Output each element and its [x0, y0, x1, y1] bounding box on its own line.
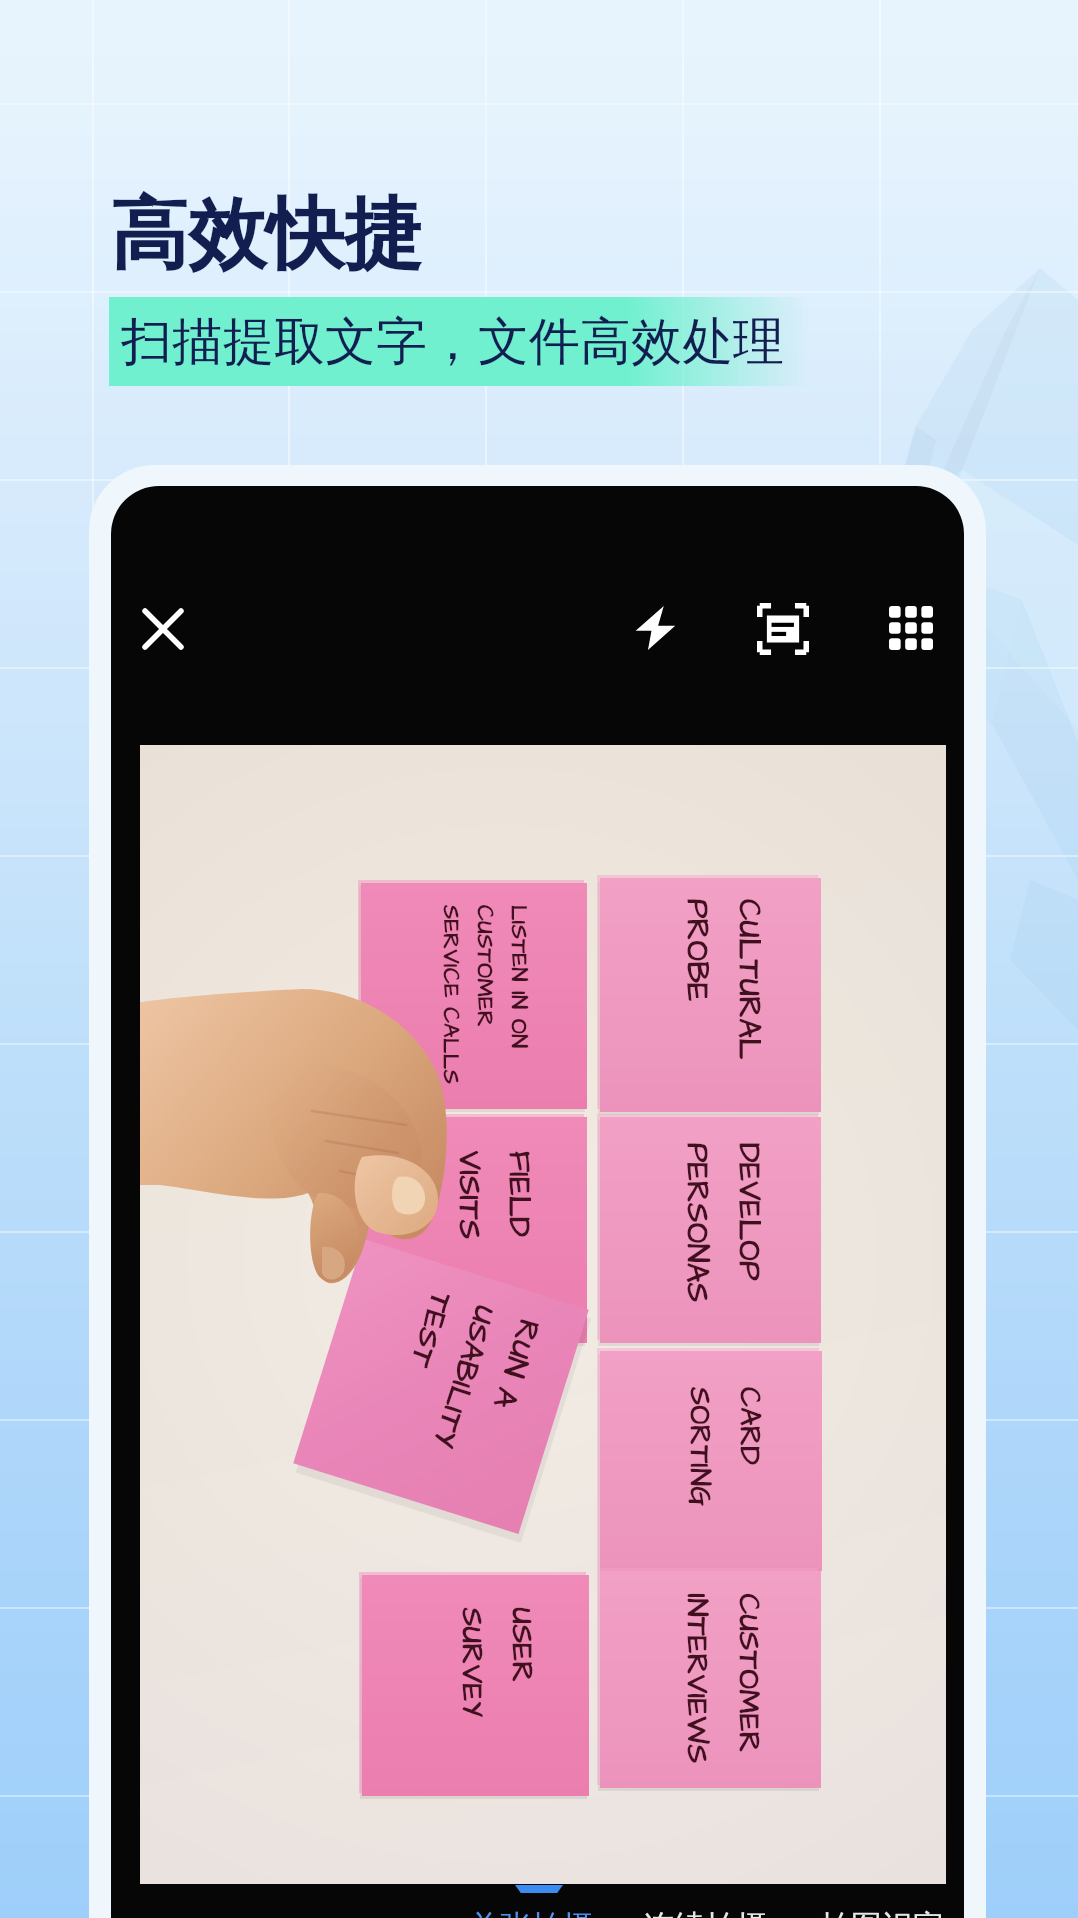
button[interactable]: 单张拍摄: [465, 1897, 597, 1918]
staticText: VISITS: [452, 1151, 490, 1240]
staticText: CUSTOMER: [470, 905, 500, 1028]
button[interactable]: 连续拍摄: [639, 1897, 771, 1918]
button[interactable]: Scan text: [747, 593, 819, 665]
staticText: 高效快捷: [110, 186, 422, 284]
staticText: SORTING: [683, 1387, 719, 1507]
staticText: 单张拍摄: [469, 1907, 593, 1918]
staticText: DEVELOP: [732, 1143, 770, 1281]
staticText: SURVEY: [454, 1607, 491, 1718]
staticText: 扫描提取文字，文件高效处理: [121, 310, 784, 374]
staticText: SERVICE CALLS: [436, 905, 466, 1085]
staticText: RUN A: [486, 1315, 550, 1415]
staticText: 连续拍摄: [643, 1907, 767, 1918]
staticText: LISTEN IN ON: [504, 905, 534, 1049]
staticText: USER: [504, 1607, 541, 1683]
button[interactable]: Close: [127, 593, 199, 665]
staticText: 拍图识字: [820, 1907, 944, 1918]
button[interactable]: Grid view: [875, 592, 947, 664]
button[interactable]: 拍图识字: [816, 1897, 948, 1918]
staticText: PROBE: [680, 899, 718, 1002]
button[interactable]: Flash: [619, 592, 691, 664]
staticText: FIELD: [502, 1151, 540, 1238]
staticText: TEST: [403, 1288, 462, 1373]
staticText: INTERVIEWS: [679, 1593, 716, 1764]
staticText: USABILITY: [426, 1302, 506, 1453]
staticText: PERSONAS: [680, 1143, 718, 1303]
staticText: CULTURAL: [732, 899, 770, 1060]
staticText: CARD: [733, 1387, 769, 1466]
staticText: CUSTOMER: [731, 1593, 768, 1753]
